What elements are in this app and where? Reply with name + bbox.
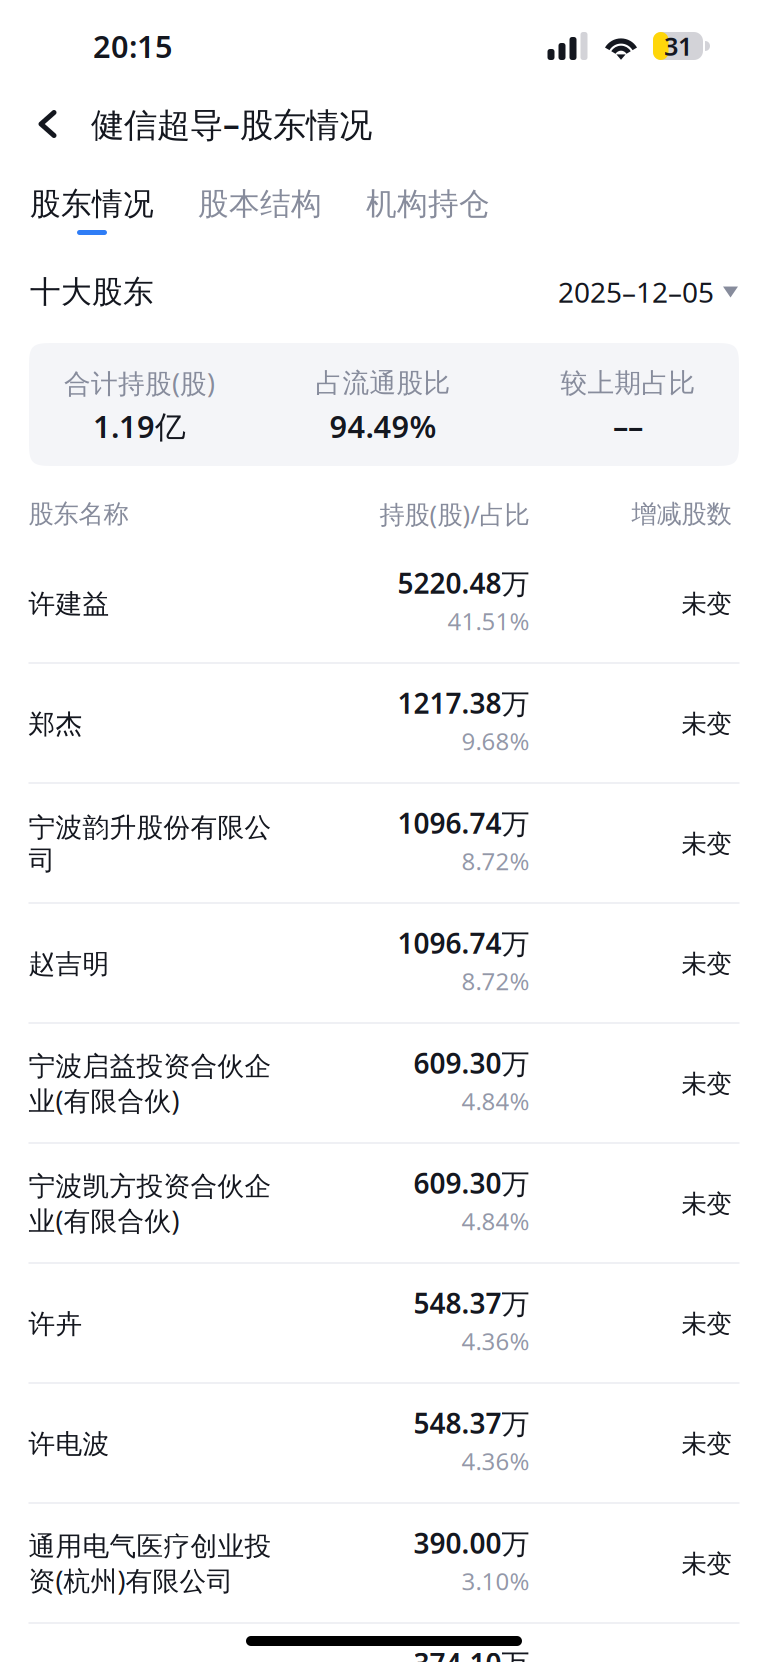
staticText: 赵吉明 (28, 948, 109, 980)
staticText: 较上期占比 (560, 367, 695, 399)
staticText: 4.36% (461, 1445, 529, 1477)
staticText: 8.72% (461, 845, 529, 877)
staticText: 374.10万 (413, 1644, 529, 1662)
staticText: 增减股数 (631, 498, 731, 529)
staticText: 5220.48万 (397, 564, 529, 602)
staticText: 宁波凯方投资合伙企业(有限合伙) (28, 1170, 271, 1238)
staticText: 宁波韵升股份有限公司 (28, 811, 271, 877)
button[interactable]: 许建益 (0, 544, 768, 664)
staticText: 许建益 (28, 588, 109, 620)
staticText: 548.37万 (413, 1284, 529, 1322)
staticText: 4.36% (461, 1325, 529, 1357)
staticText: 十大股东 (30, 273, 154, 311)
staticText: 健信超导–股东情况 (91, 102, 372, 146)
staticText: –– (613, 406, 643, 446)
staticText: 未变 (681, 588, 731, 619)
staticText: 2025–12–05 (558, 273, 714, 311)
button[interactable]: 机构持仓 (366, 185, 490, 235)
staticText: 4.84% (461, 1205, 529, 1237)
staticText: 94.49% (329, 406, 436, 446)
staticText: 390.00万 (413, 1524, 529, 1562)
staticText: 1096.74万 (397, 804, 529, 842)
staticText: 许卉 (28, 1308, 82, 1340)
staticText: 31 (664, 29, 692, 63)
button[interactable]: 郑杰 (0, 664, 768, 784)
staticText: 郑杰 (28, 708, 82, 740)
staticText: 未变 (681, 1548, 731, 1579)
staticText: 未变 (681, 1068, 731, 1099)
staticText: 1217.38万 (397, 684, 529, 722)
staticText: 许电波 (28, 1428, 109, 1460)
button[interactable]: Back (16, 92, 74, 156)
staticText: 41.51% (447, 605, 529, 637)
staticText: 609.30万 (413, 1164, 529, 1202)
button[interactable]: 股东情况 (30, 185, 154, 235)
staticText: 持股(股)/占比 (379, 497, 529, 531)
staticText: 9.68% (461, 725, 529, 757)
staticText: 股东名称 (28, 498, 128, 529)
staticText: 未变 (681, 1188, 731, 1219)
staticText: 股东情况 (30, 185, 154, 223)
button[interactable]: 赵吉明 (0, 904, 768, 1024)
staticText: 1.19亿 (93, 406, 186, 446)
staticText: 未变 (681, 708, 731, 739)
staticText: 548.37万 (413, 1404, 529, 1442)
staticText: 3.10% (461, 1565, 529, 1597)
staticText: 宁波启益投资合伙企业(有限合伙) (28, 1050, 271, 1118)
staticText: 合计持股(股) (64, 365, 215, 401)
staticText: 未变 (681, 948, 731, 979)
button[interactable]: 宁波韵升股份有限公司 (0, 784, 768, 904)
staticText: 未变 (681, 828, 731, 859)
button[interactable]: 通用电气医疗创业投资(杭州)有限公司 (0, 1504, 768, 1624)
staticText: 占流通股比 (315, 367, 450, 399)
button[interactable]: 股本结构 (198, 185, 322, 235)
button[interactable]: 浙江浙商证券 (0, 1624, 768, 1662)
staticText: 未变 (681, 1308, 731, 1339)
button[interactable]: 宁波凯方投资合伙企业(有限合伙) (0, 1144, 768, 1264)
staticText: 4.84% (461, 1085, 529, 1117)
staticText: 机构持仓 (366, 185, 490, 223)
button[interactable]: 2025–12–05 (558, 273, 738, 311)
staticText: 通用电气医疗创业投资(杭州)有限公司 (28, 1530, 271, 1598)
button[interactable]: 许卉 (0, 1264, 768, 1384)
staticText: 股本结构 (198, 185, 322, 223)
button[interactable]: 许电波 (0, 1384, 768, 1504)
button[interactable]: 宁波启益投资合伙企业(有限合伙) (0, 1024, 768, 1144)
staticText: 1096.74万 (397, 924, 529, 962)
staticText: 20:15 (93, 26, 173, 66)
staticText: 609.30万 (413, 1044, 529, 1082)
staticText: 未变 (681, 1428, 731, 1459)
staticText: 8.72% (461, 965, 529, 997)
